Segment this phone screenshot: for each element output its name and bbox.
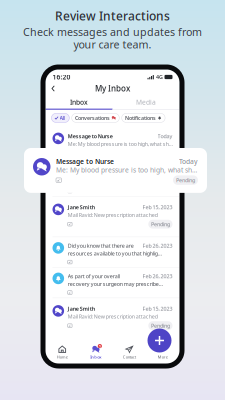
staticText: resources available to you that highlig… (68, 250, 162, 257)
staticText: Contact (123, 354, 136, 359)
button[interactable]: Media (112, 96, 179, 110)
staticText: My Inbox (95, 83, 130, 94)
button[interactable]: Contact (112, 345, 146, 359)
staticText: Message to Nurse (68, 133, 113, 140)
staticText: Me: My blood pressure is too high, what … (56, 165, 197, 174)
button[interactable]: Jane Smith (45, 298, 179, 338)
staticText: 16:20 (52, 73, 70, 81)
staticText: recovery your surgeon may prescribe… (68, 280, 163, 288)
staticText: your care team. (73, 37, 151, 52)
staticText: 1 (99, 343, 101, 349)
staticText: Pending (151, 221, 170, 228)
staticText: Today (179, 157, 198, 166)
button[interactable]: Home (45, 345, 79, 359)
button[interactable]: Message to Nurse (24, 148, 207, 193)
staticText: Review Interactions (55, 8, 170, 24)
button[interactable]: Notifications (122, 113, 165, 122)
staticText: Message to Nurse (56, 157, 114, 166)
button[interactable]: Did you know that there are (45, 237, 179, 267)
button[interactable]: Message to Nurse (45, 126, 179, 166)
staticText: Your care team has shared (68, 171, 133, 178)
staticText: Feb 26, 2023 (142, 273, 172, 280)
staticText: 4G (156, 73, 163, 81)
button[interactable]: More (146, 345, 179, 359)
staticText: Inbox (70, 98, 88, 107)
staticText: As part of your overall (68, 273, 120, 280)
staticText: Pending (176, 177, 195, 184)
button[interactable]: Back (45, 83, 61, 94)
staticText: Me: My blood pressure is too high, what … (68, 140, 172, 148)
staticText: Inbox (90, 354, 101, 359)
staticText: Mar 2, 2023 (144, 171, 172, 178)
button[interactable]: All (51, 113, 69, 122)
button[interactable]: New message (147, 328, 171, 352)
button[interactable]: As part of your overall (45, 268, 179, 298)
button[interactable]: Inbox (45, 96, 112, 110)
staticText: More (158, 354, 168, 359)
staticText: Today (157, 133, 172, 140)
staticText: Check messages and updates from (23, 25, 202, 39)
staticText: Feb 15, 2023 (142, 204, 172, 211)
staticText: Did you know that there are (68, 242, 134, 249)
staticText: Home (57, 354, 68, 359)
staticText: Media (136, 98, 156, 107)
staticText: Feb 26, 2023 (142, 242, 172, 249)
staticText: Mail Ravid: New prescription attached (68, 313, 158, 320)
button[interactable]: 1 (79, 345, 112, 359)
staticText: All (59, 114, 64, 121)
staticText: Jane Smith (68, 204, 95, 211)
staticText: Feb 15, 2023 (142, 305, 172, 312)
staticText: Mail Ravid: New prescription attached (68, 211, 158, 219)
button[interactable]: Jane Smith (45, 197, 179, 237)
staticText: Notifications (125, 114, 156, 121)
button[interactable]: Your care team has shared (45, 166, 179, 196)
staticText: Jane Smith (68, 305, 95, 312)
button[interactable]: Conversations (72, 113, 119, 122)
staticText: Pending (151, 322, 170, 329)
staticText: Conversations (75, 114, 110, 121)
